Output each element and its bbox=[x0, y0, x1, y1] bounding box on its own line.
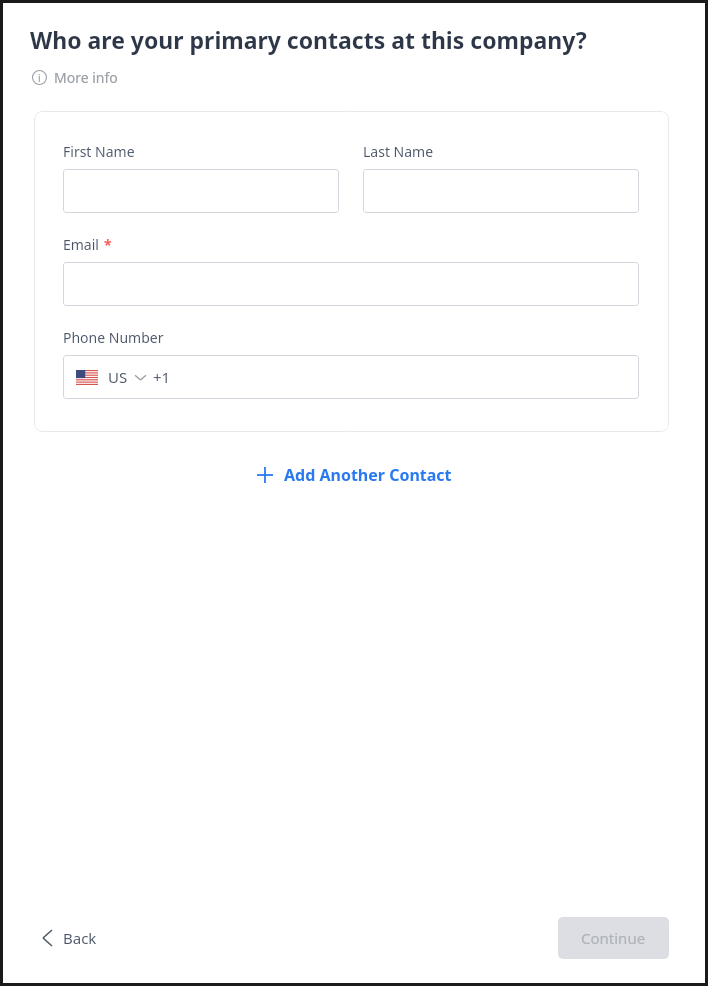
staticText: Add Another Contact bbox=[284, 464, 452, 486]
staticText: US bbox=[108, 367, 128, 387]
button[interactable]: i bbox=[30, 66, 120, 89]
button[interactable] bbox=[63, 169, 339, 213]
staticText: First Name bbox=[63, 142, 135, 161]
staticText: +1 bbox=[153, 367, 171, 387]
button[interactable]: Add Another Contact bbox=[249, 458, 460, 492]
button[interactable]: Back bbox=[39, 920, 101, 956]
staticText: i bbox=[38, 71, 41, 85]
staticText: Who are your primary contacts at this co… bbox=[30, 24, 587, 55]
button[interactable] bbox=[63, 262, 639, 306]
staticText: More info bbox=[54, 68, 118, 87]
button[interactable] bbox=[363, 169, 639, 213]
staticText: Back bbox=[63, 928, 97, 948]
staticText: Phone Number bbox=[63, 328, 164, 347]
staticText: Continue bbox=[581, 928, 646, 948]
button[interactable]: US bbox=[63, 355, 639, 399]
staticText: * bbox=[104, 235, 112, 254]
button[interactable]: Continue bbox=[558, 917, 669, 959]
staticText: Email bbox=[63, 235, 99, 254]
staticText: Last Name bbox=[363, 142, 434, 161]
